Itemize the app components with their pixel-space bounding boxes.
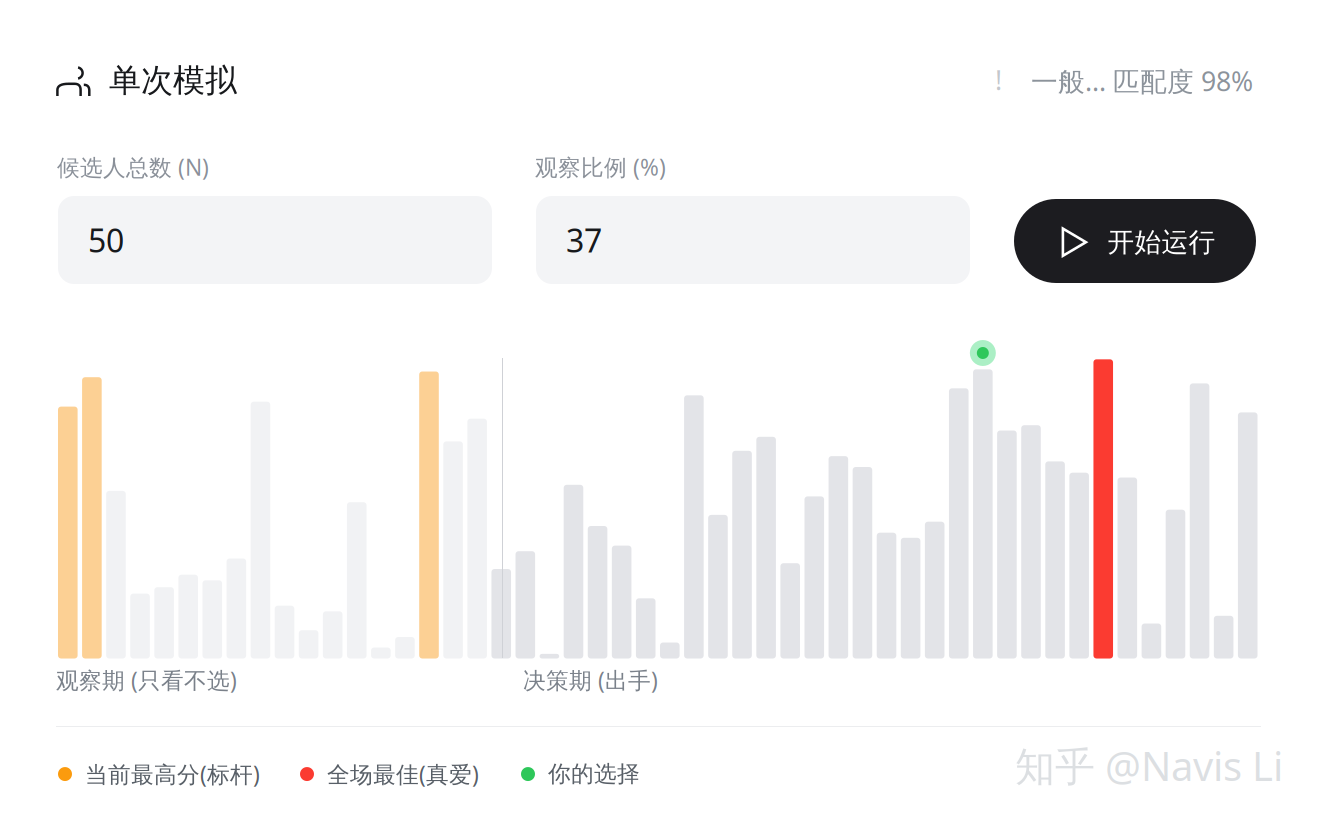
button[interactable]: 当前最高分(标杆): [58, 759, 260, 789]
staticText: 观察比例 (%): [535, 152, 666, 182]
staticText: 候选人总数 (N): [57, 152, 209, 182]
button[interactable]: 37: [536, 196, 970, 284]
button[interactable]: 开始运行: [1014, 199, 1256, 283]
staticText: 观察期 (只看不选): [56, 665, 237, 695]
staticText: 当前最高分(标杆): [85, 759, 260, 789]
button[interactable]: !: [995, 64, 1285, 98]
staticText: 单次模拟: [109, 61, 237, 100]
staticText: 全场最佳(真爱): [327, 759, 479, 789]
staticText: 50: [88, 219, 124, 261]
button[interactable]: 全场最佳(真爱): [300, 759, 479, 789]
button[interactable]: 单次模拟: [56, 49, 256, 95]
button[interactable]: 50: [58, 196, 492, 284]
staticText: 一般... 匹配度 98%: [1031, 63, 1253, 99]
staticText: !: [995, 62, 1002, 98]
staticText: 开始运行: [1107, 226, 1215, 259]
staticText: 37: [566, 219, 602, 261]
staticText: 知乎 @Navis Li: [1015, 739, 1283, 792]
staticText: 决策期 (出手): [523, 665, 658, 695]
staticText: 你的选择: [548, 760, 640, 788]
button[interactable]: 你的选择: [521, 760, 640, 788]
